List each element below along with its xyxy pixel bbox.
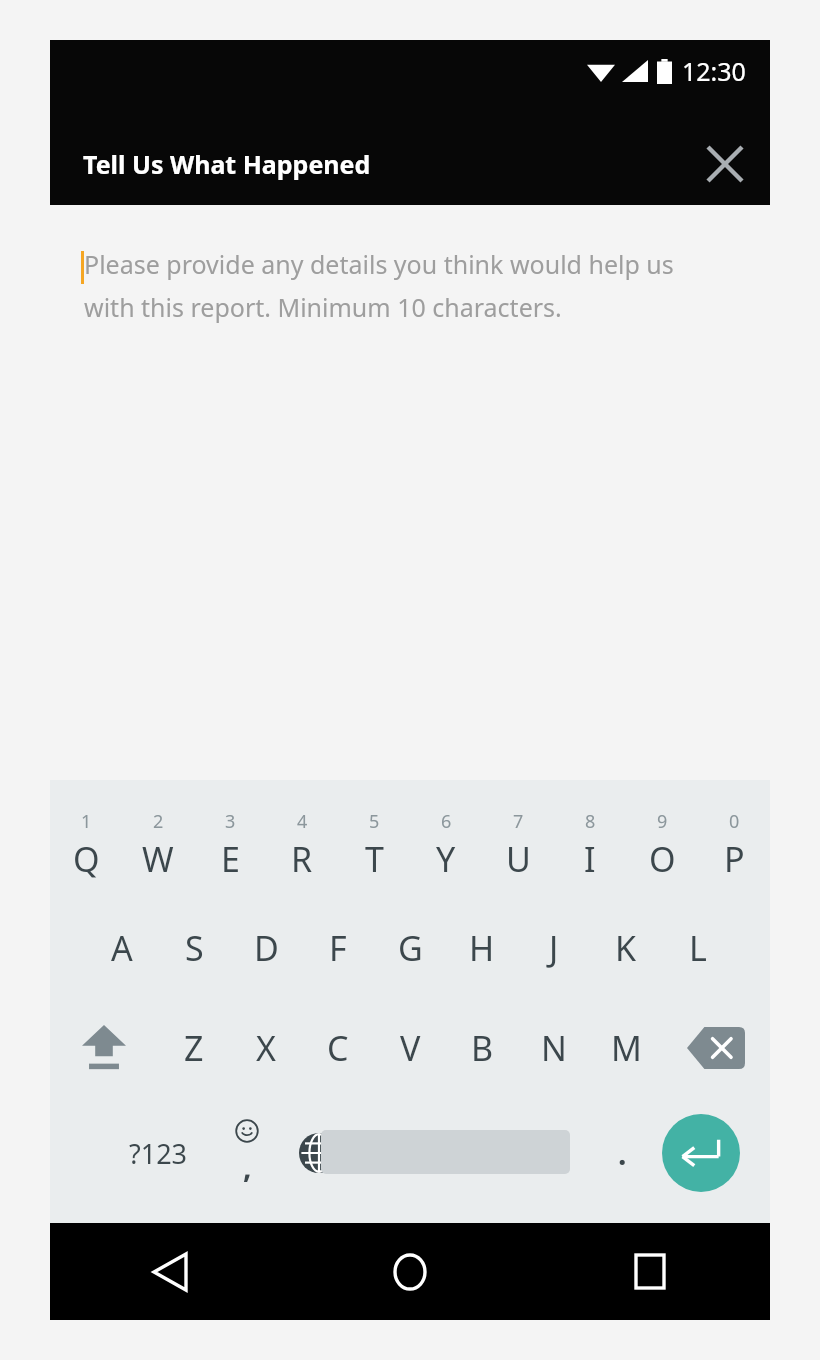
staticText: 1	[81, 809, 92, 834]
button[interactable]: Please provide any details you think wou…	[81, 247, 730, 324]
button[interactable]: J	[518, 898, 590, 998]
staticText: J	[549, 925, 559, 971]
staticText: C	[327, 1025, 349, 1071]
staticText: Q	[73, 836, 100, 882]
button[interactable]: 0	[698, 790, 770, 900]
staticText: 2	[153, 809, 164, 834]
button[interactable]: M	[590, 998, 662, 1098]
button[interactable]: V	[374, 998, 446, 1098]
button[interactable]: 1	[50, 790, 122, 900]
staticText: ,	[243, 1146, 252, 1187]
staticText: U	[506, 836, 531, 882]
staticText: K	[615, 925, 637, 971]
staticText: T	[365, 836, 384, 882]
button[interactable]: H	[446, 898, 518, 998]
button[interactable]: X	[230, 998, 302, 1098]
staticText: R	[291, 836, 313, 882]
staticText: 12:30	[682, 54, 746, 88]
staticText: 4	[297, 809, 308, 834]
staticText: H	[469, 925, 495, 971]
button[interactable]: Home	[290, 1223, 530, 1320]
staticText: ?123	[129, 1135, 188, 1172]
staticText: M	[611, 1025, 642, 1071]
button[interactable]: N	[518, 998, 590, 1098]
staticText: W	[142, 836, 174, 882]
button[interactable]: ?123	[106, 1108, 210, 1198]
staticText: 9	[657, 809, 668, 834]
button[interactable]: 4	[266, 790, 338, 900]
staticText: Please provide any details you think wou…	[84, 247, 730, 324]
staticText: Tell Us What Happened	[83, 147, 371, 181]
button[interactable]: B	[446, 998, 518, 1098]
button[interactable]: 9	[626, 790, 698, 900]
button[interactable]: 3	[194, 790, 266, 900]
button[interactable]: Enter	[662, 1114, 740, 1192]
staticText: N	[541, 1025, 567, 1071]
staticText: E	[221, 836, 240, 882]
staticText: P	[724, 836, 745, 882]
button[interactable]: S	[158, 898, 230, 998]
button[interactable]: .	[584, 1108, 660, 1198]
button[interactable]: Close	[695, 134, 755, 194]
staticText: L	[689, 925, 707, 971]
button[interactable]: Shift	[50, 998, 158, 1098]
staticText: B	[471, 1025, 494, 1071]
staticText: G	[398, 925, 423, 971]
staticText: X	[256, 1025, 276, 1071]
staticText: I	[584, 836, 596, 882]
staticText: 3	[225, 809, 236, 834]
button[interactable]: 7	[482, 790, 554, 900]
staticText: F	[329, 925, 347, 971]
button[interactable]: 2	[122, 790, 194, 900]
button[interactable]: D	[230, 898, 302, 998]
staticText: D	[254, 925, 279, 971]
staticText: S	[185, 925, 204, 971]
button[interactable]: Comma and emoji	[205, 1108, 289, 1198]
button[interactable]: 8	[554, 790, 626, 900]
button[interactable]: Recents	[530, 1223, 770, 1320]
staticText: 8	[585, 809, 596, 834]
staticText: V	[400, 1025, 421, 1071]
staticText: 6	[441, 809, 452, 834]
staticText: A	[111, 925, 133, 971]
button[interactable]: Backspace	[662, 998, 770, 1098]
button[interactable]: K	[590, 898, 662, 998]
staticText: 0	[729, 809, 740, 834]
button[interactable]: G	[374, 898, 446, 998]
button[interactable]: Change language	[278, 1108, 360, 1198]
staticText: 5	[369, 809, 380, 834]
staticText: 7	[513, 809, 524, 834]
button[interactable]: 6	[410, 790, 482, 900]
button[interactable]: 5	[338, 790, 410, 900]
button[interactable]: Back	[50, 1223, 290, 1320]
button[interactable]: L	[662, 898, 734, 998]
button[interactable]: A	[86, 898, 158, 998]
staticText: Z	[184, 1025, 204, 1071]
button[interactable]: Z	[158, 998, 230, 1098]
button[interactable]: F	[302, 898, 374, 998]
staticText: O	[649, 836, 676, 882]
staticText: Y	[436, 836, 456, 882]
staticText: .	[618, 1133, 627, 1174]
button[interactable]: C	[302, 998, 374, 1098]
